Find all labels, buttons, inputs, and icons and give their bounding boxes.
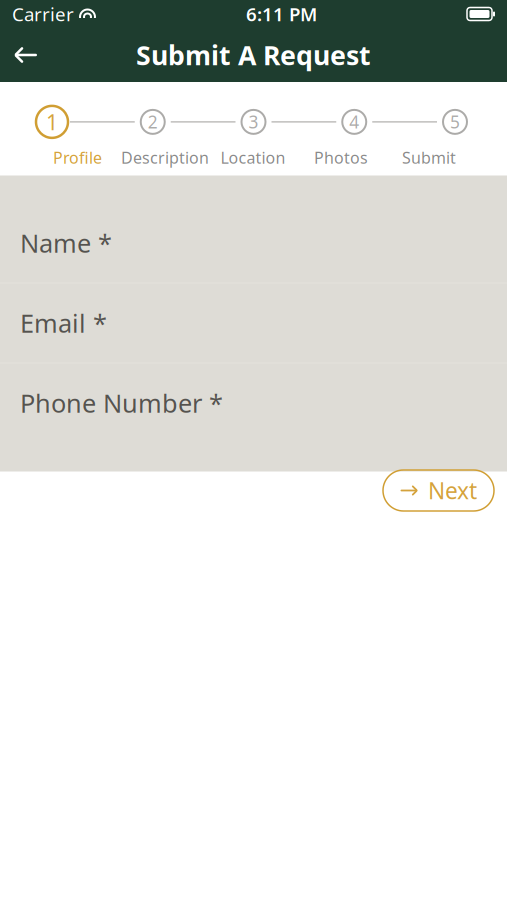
staticText: Location	[220, 147, 285, 168]
button[interactable]: Next	[383, 470, 494, 511]
staticText: Submit	[402, 147, 456, 168]
staticText: Name *	[20, 226, 112, 260]
button[interactable]: Name *	[0, 203, 507, 283]
staticText: Phone Number *	[20, 386, 223, 420]
staticText: Profile	[53, 147, 102, 168]
button[interactable]: Back	[4, 33, 48, 77]
staticText: Description	[121, 147, 209, 168]
staticText: 5	[450, 110, 460, 133]
staticText: 2	[148, 110, 158, 133]
staticText: Next	[428, 475, 477, 505]
staticText: Email *	[20, 306, 107, 340]
staticText: Carrier	[12, 2, 74, 26]
button[interactable]: Email *	[0, 283, 507, 363]
staticText: 6:11 PM	[246, 2, 317, 26]
staticText: 3	[248, 110, 258, 133]
staticText: 1	[46, 108, 58, 136]
staticText: Submit A Request	[136, 37, 371, 73]
staticText: Photos	[314, 147, 368, 168]
button[interactable]: Phone Number *	[0, 363, 507, 443]
staticText: 4	[349, 110, 359, 133]
